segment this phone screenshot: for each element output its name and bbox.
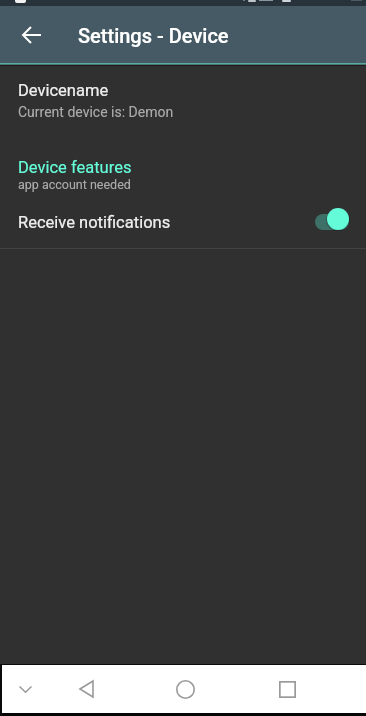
button[interactable]: Hide keyboard [2, 665, 48, 713]
button[interactable]: Recent apps [247, 665, 327, 713]
button[interactable]: Navigate up [12, 7, 50, 62]
staticText: Devicename [18, 81, 109, 100]
staticText: app account needed [18, 177, 131, 192]
button[interactable]: Back [48, 665, 124, 713]
staticText: Device features [18, 158, 132, 177]
staticText: Current device is: Demon [18, 104, 174, 120]
button[interactable]: Receive notifications [0, 199, 366, 243]
button[interactable]: Devicename [0, 70, 366, 126]
staticText: Settings - Device [78, 24, 229, 47]
button[interactable]: Home [145, 665, 225, 713]
staticText: Receive notifications [18, 213, 171, 232]
